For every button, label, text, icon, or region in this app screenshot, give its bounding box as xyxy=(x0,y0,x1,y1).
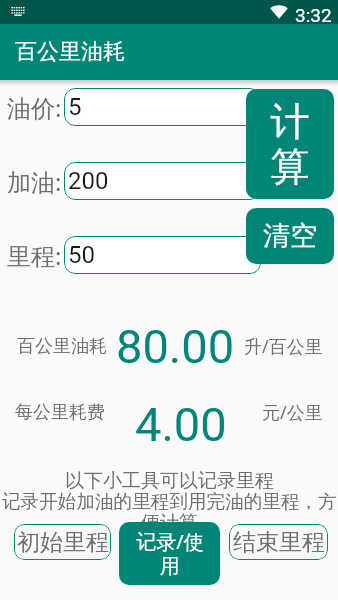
staticText: 4.00 xyxy=(135,397,227,452)
staticText: 3:32 xyxy=(295,4,332,26)
button[interactable]: 清空 xyxy=(246,208,334,264)
staticText: 升/百公里 xyxy=(244,334,323,359)
staticText: 百公里油耗 xyxy=(17,335,107,358)
staticText: 每公里耗费 xyxy=(15,401,105,424)
staticText: 元/公里 xyxy=(262,400,323,425)
button[interactable]: 初始里程 xyxy=(14,524,111,560)
button[interactable]: 计算 xyxy=(246,89,334,199)
staticText: 百公里油耗 xyxy=(15,38,125,66)
staticText: 便计算 xyxy=(141,511,198,535)
staticText: 加油: xyxy=(7,165,62,198)
staticText: 油价: xyxy=(7,91,62,124)
button[interactable]: 50 xyxy=(64,236,261,274)
staticText: 初始里程 xyxy=(17,528,109,557)
button[interactable]: 记录/使用 xyxy=(119,522,220,585)
staticText: 200 xyxy=(68,167,109,195)
other: Keyboard input method xyxy=(11,7,25,16)
staticText: 计算 xyxy=(270,97,310,191)
staticText: 记录/使用 xyxy=(135,528,205,579)
staticText: 清空 xyxy=(263,219,317,253)
button[interactable]: 5 xyxy=(64,88,261,126)
other: Wi-Fi signal xyxy=(270,4,288,19)
staticText: 50 xyxy=(68,241,95,269)
button[interactable]: 结束里程 xyxy=(229,524,328,560)
staticText: 5 xyxy=(68,93,82,121)
staticText: 80.00 xyxy=(116,319,235,374)
button[interactable]: 200 xyxy=(64,162,261,200)
staticText: 以下小工具可以记录里程 xyxy=(65,469,274,493)
staticText: 结束里程 xyxy=(233,528,325,557)
staticText: 里程: xyxy=(7,239,62,272)
staticText: 记录开始加油的里程到用完油的里程，方 xyxy=(2,490,337,513)
